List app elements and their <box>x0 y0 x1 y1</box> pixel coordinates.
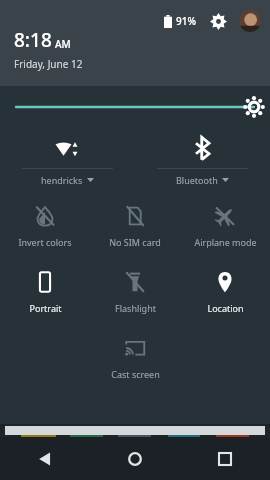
staticText: Portrait <box>29 302 62 314</box>
button[interactable]: Invert colors <box>0 194 90 260</box>
button[interactable]: Home <box>90 437 180 480</box>
staticText: No SIM card <box>109 236 161 248</box>
button[interactable]: Airplane mode <box>180 194 270 260</box>
staticText: Bluetooth <box>176 174 218 186</box>
button[interactable]: Brightness <box>0 86 270 128</box>
button[interactable]: Portrait <box>0 260 90 326</box>
button[interactable]: Location <box>180 260 270 326</box>
button[interactable]: User profile <box>239 10 261 32</box>
staticText: 91% <box>176 14 196 28</box>
button[interactable]: Recent apps <box>180 437 270 480</box>
button[interactable]: No SIM card <box>90 194 180 260</box>
button[interactable]: Back <box>0 437 90 480</box>
button[interactable]: Flashlight <box>90 260 180 326</box>
staticText: Invert colors <box>18 236 72 248</box>
staticText: Friday, June 12 <box>14 57 83 71</box>
staticText: Airplane mode <box>194 236 257 248</box>
staticText: 8:18 <box>14 27 52 53</box>
staticText: Flashlight <box>115 302 156 314</box>
button[interactable]: Wi-Fi <box>0 128 135 190</box>
button[interactable]: Cast screen <box>90 326 180 392</box>
staticText: Location <box>207 302 244 314</box>
button[interactable]: Bluetooth <box>135 128 270 190</box>
button[interactable]: Settings <box>208 11 228 31</box>
staticText: hendricks <box>41 174 83 186</box>
staticText: AM <box>55 37 71 51</box>
staticText: Cast screen <box>111 368 160 380</box>
